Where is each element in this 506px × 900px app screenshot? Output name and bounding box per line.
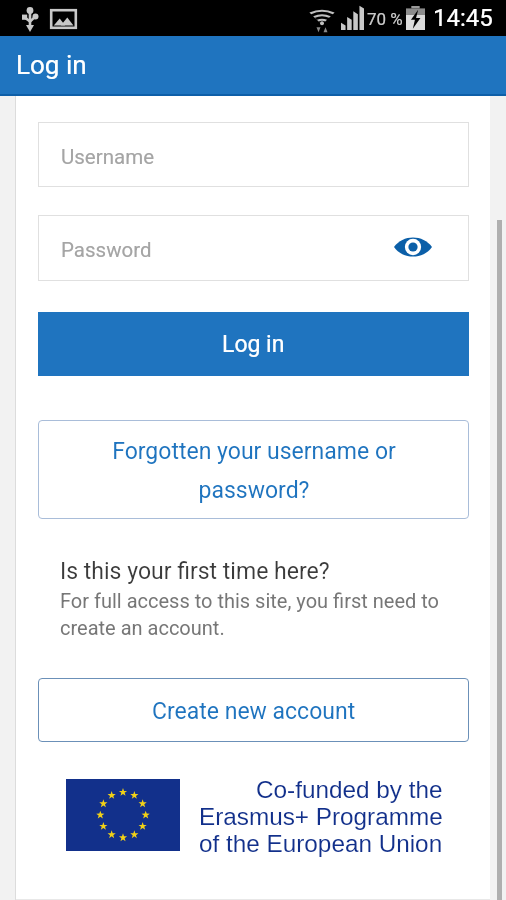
staticText: Log in xyxy=(222,331,285,358)
button[interactable]: Create new account xyxy=(38,678,469,742)
button[interactable]: Forgotten your username or password? xyxy=(38,420,469,519)
button[interactable]: Password xyxy=(38,215,469,281)
staticText: For full access to this site, you first … xyxy=(60,589,440,640)
staticText: Username xyxy=(61,145,155,169)
staticText: Forgotten your username or password? xyxy=(104,438,404,503)
staticText: 14:45 xyxy=(433,4,493,32)
staticText: Erasmus+ Programme xyxy=(199,803,443,830)
staticText: of the European Union xyxy=(199,830,443,857)
staticText: Password xyxy=(61,238,152,262)
button[interactable]: Log in xyxy=(38,312,469,376)
staticText: Log in xyxy=(16,50,87,80)
staticText: Co-funded by the xyxy=(256,776,443,803)
staticText: Is this your first time here? xyxy=(60,558,330,585)
staticText: 70 % xyxy=(367,9,403,29)
staticText: Create new account xyxy=(152,698,356,725)
button[interactable]: Username xyxy=(38,122,469,187)
button[interactable]: Show password xyxy=(391,225,435,269)
